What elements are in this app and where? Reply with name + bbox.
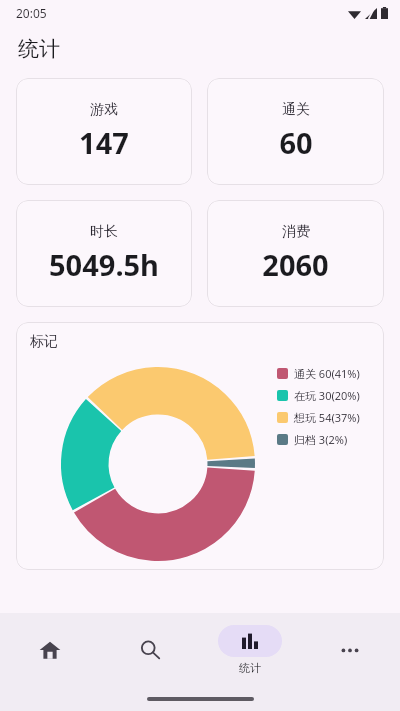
staticText: 标记 (30, 333, 58, 351)
staticText: 60 (279, 123, 313, 162)
staticText: 通关 60(41%) (294, 366, 360, 381)
staticText: 想玩 54(37%) (294, 410, 360, 425)
staticText: 游戏 (90, 101, 118, 119)
button[interactable]: 游戏 (16, 78, 192, 185)
button[interactable]: 时长 (16, 200, 192, 307)
staticText: 归档 3(2%) (294, 432, 348, 447)
staticText: 147 (79, 123, 129, 162)
staticText: 通关 (282, 101, 310, 119)
staticText: 统计 (18, 36, 60, 62)
staticText: 5049.5h (49, 245, 159, 284)
button[interactable]: Home (0, 630, 100, 670)
button[interactable]: 通关 (207, 78, 384, 185)
staticText: 20:05 (16, 5, 47, 21)
button[interactable]: More (300, 630, 400, 670)
staticText: 2060 (262, 245, 329, 284)
button[interactable]: 消费 (207, 200, 384, 307)
button[interactable]: 标记 (16, 322, 384, 570)
staticText: 统计 (239, 661, 261, 675)
staticText: 消费 (282, 223, 310, 241)
staticText: 在玩 30(20%) (294, 388, 360, 403)
button[interactable]: Search (100, 630, 200, 670)
staticText: 时长 (90, 223, 118, 241)
button[interactable]: 统计 (200, 621, 300, 679)
